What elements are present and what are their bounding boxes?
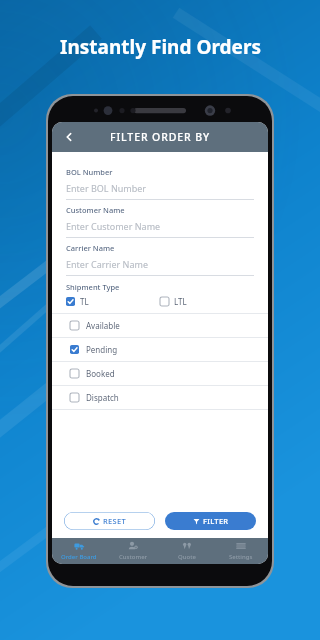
button[interactable]: FILTER [165,512,256,530]
staticText: Quote [178,553,196,561]
staticText: Settings [229,553,253,561]
staticText: Dispatch [86,392,119,403]
button[interactable]: Settings [214,538,268,564]
staticText: Instantly Find Orders [60,34,261,60]
staticText: Shipment Type [66,282,120,292]
staticText: LTL [174,296,187,307]
button[interactable]: Pending [52,338,268,361]
staticText: Enter Customer Name [66,220,161,232]
staticText: Available [86,320,120,331]
button[interactable]: Order Board [52,538,106,564]
button[interactable]: Back [56,124,82,150]
button[interactable]: RESET [64,512,155,530]
button[interactable]: Available [52,314,268,337]
staticText: TL [80,296,89,307]
button[interactable]: TL [66,296,160,307]
button[interactable]: LTL [160,296,254,307]
button[interactable]: Booked [52,362,268,385]
staticText: Order Board [61,553,97,561]
staticText: FILTER ORDER BY [110,130,211,144]
button[interactable]: Carrier Name [52,238,268,276]
staticText: Customer [119,553,148,561]
button[interactable]: Dispatch [52,386,268,409]
button[interactable]: Customer Name [52,200,268,238]
button[interactable]: BOL Number [52,162,268,200]
button[interactable]: Customer [106,538,160,564]
staticText: Enter Carrier Name [66,258,148,270]
staticText: Customer Name [66,205,125,215]
button[interactable]: Quote [160,538,214,564]
staticText: FILTER [203,516,229,526]
staticText: BOL Number [66,167,113,177]
staticText: Enter BOL Number [66,182,147,194]
staticText: Booked [86,368,115,379]
staticText: Pending [86,344,118,355]
staticText: RESET [103,516,126,526]
staticText: Carrier Name [66,243,115,253]
